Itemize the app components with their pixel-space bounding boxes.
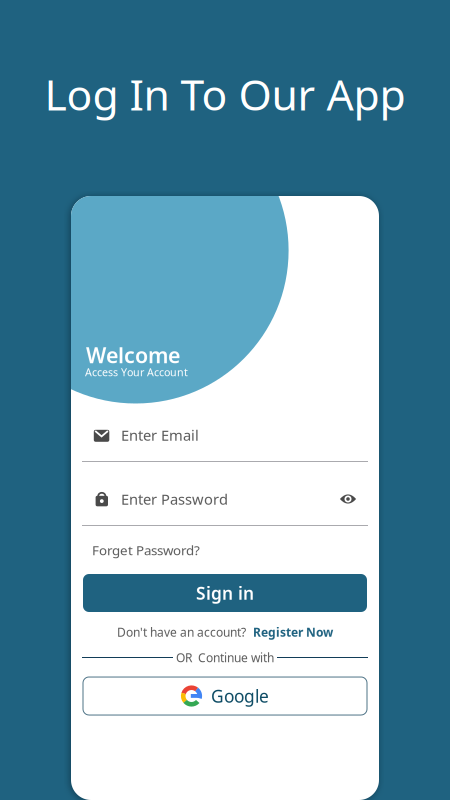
staticText: Log In To Our App	[44, 66, 405, 122]
button[interactable]: Show password	[330, 484, 366, 514]
staticText: Access Your Account	[85, 365, 188, 379]
button[interactable]: Google	[83, 677, 367, 715]
staticText: Sign in	[196, 581, 254, 604]
staticText: Enter Password	[121, 489, 228, 509]
staticText: Welcome	[86, 341, 180, 369]
button[interactable]: Register Now	[253, 624, 333, 640]
staticText: Don't have an account?	[117, 624, 246, 640]
staticText: Register Now	[253, 624, 333, 640]
staticText: Google	[211, 684, 269, 707]
button[interactable]: Sign in	[83, 574, 367, 612]
staticText: OR Continue with	[176, 649, 274, 665]
staticText: Enter Email	[121, 425, 199, 445]
staticText: Forget Password?	[92, 541, 200, 559]
button[interactable]: Forget Password?	[92, 542, 202, 558]
